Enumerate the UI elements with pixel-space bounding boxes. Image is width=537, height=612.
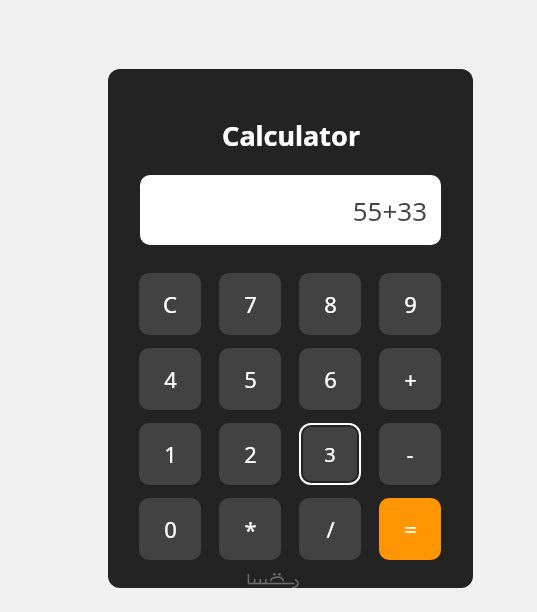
button[interactable]: 4 [139,348,201,410]
staticText: 3 [324,441,336,468]
button[interactable]: = [379,498,441,560]
button[interactable]: C [139,273,201,335]
staticText: 0 [164,514,177,544]
staticText: C [163,289,177,319]
staticText: 1 [164,439,177,469]
staticText: + [404,364,417,394]
staticText: 6 [324,364,337,394]
staticText: 4 [164,364,177,394]
staticText: 5 [244,364,257,394]
staticText: Calculator [222,117,360,154]
button[interactable]: - [379,423,441,485]
button[interactable]: 55+33 [140,175,441,245]
staticText: 8 [324,289,337,319]
staticText: / [326,514,335,544]
staticText: 2 [244,439,257,469]
staticText: 55+33 [352,193,427,228]
button[interactable]: 0 [139,498,201,560]
staticText: 9 [404,289,417,319]
button[interactable]: 2 [219,423,281,485]
button[interactable]: 6 [299,348,361,410]
button[interactable]: / [299,498,361,560]
button[interactable]: 9 [379,273,441,335]
button[interactable]: 5 [219,348,281,410]
button[interactable]: 7 [219,273,281,335]
button[interactable]: 8 [299,273,361,335]
staticText: * [244,514,257,544]
button[interactable]: 3 [303,427,357,481]
staticText: = [404,514,417,544]
button[interactable]: + [379,348,441,410]
button[interactable]: * [219,498,281,560]
staticText: - [406,439,414,469]
staticText: 7 [244,289,257,319]
button[interactable]: 1 [139,423,201,485]
